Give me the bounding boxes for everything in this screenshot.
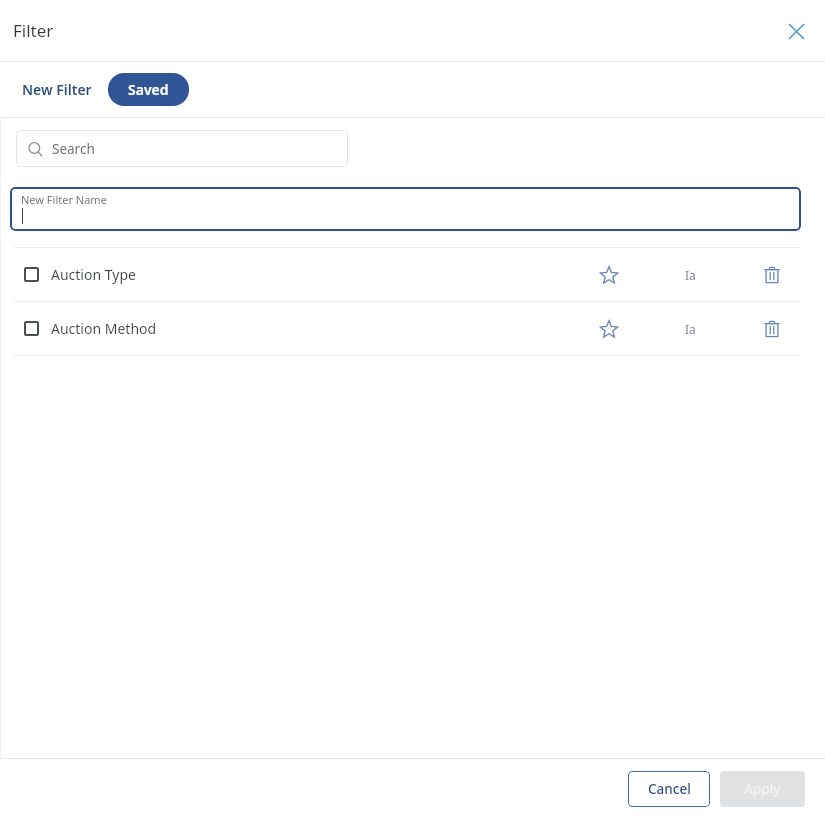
staticText: Auction Type: [51, 265, 136, 284]
button[interactable]: Select Auction Method: [24, 321, 39, 336]
button[interactable]: New Filter Name: [10, 187, 801, 231]
staticText: New Filter: [22, 80, 92, 99]
button[interactable]: Rename: [673, 258, 707, 292]
button[interactable]: Favorite: [592, 312, 626, 346]
button[interactable]: Rename: [673, 312, 707, 346]
button[interactable]: Select Auction Type: [0, 248, 825, 301]
button[interactable]: Apply: [720, 771, 805, 807]
staticText: Ia: [685, 321, 696, 337]
button[interactable]: Saved: [108, 73, 189, 106]
staticText: Ia: [685, 267, 696, 283]
button[interactable]: Select Auction Type: [24, 267, 39, 282]
button[interactable]: Cancel: [628, 771, 710, 807]
staticText: Apply: [744, 780, 781, 798]
button[interactable]: Favorite: [592, 258, 626, 292]
button[interactable]: Delete: [755, 258, 789, 292]
button[interactable]: New Filter: [12, 73, 102, 106]
staticText: Search: [52, 140, 95, 158]
staticText: Auction Method: [51, 319, 157, 338]
staticText: New Filter Name: [21, 192, 107, 207]
button[interactable]: Select Auction Method: [0, 302, 825, 355]
button[interactable]: Delete: [755, 312, 789, 346]
button[interactable]: Search: [16, 130, 348, 167]
staticText: Saved: [128, 80, 169, 99]
button[interactable]: Close: [779, 14, 813, 48]
staticText: Cancel: [648, 780, 691, 798]
staticText: Filter: [13, 19, 54, 42]
